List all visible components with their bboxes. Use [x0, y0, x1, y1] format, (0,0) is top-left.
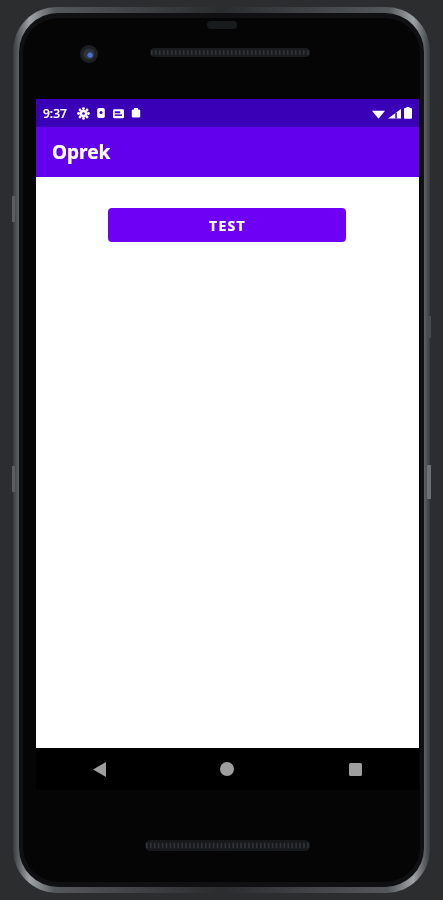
button[interactable]: Back — [36, 748, 163, 790]
staticText: Oprek — [52, 139, 111, 165]
button[interactable]: Recent apps — [291, 748, 419, 790]
button[interactable]: Home — [163, 748, 291, 790]
staticText: 9:37 — [43, 105, 67, 121]
staticText: TEST — [209, 216, 246, 235]
button[interactable]: TEST — [108, 208, 346, 242]
